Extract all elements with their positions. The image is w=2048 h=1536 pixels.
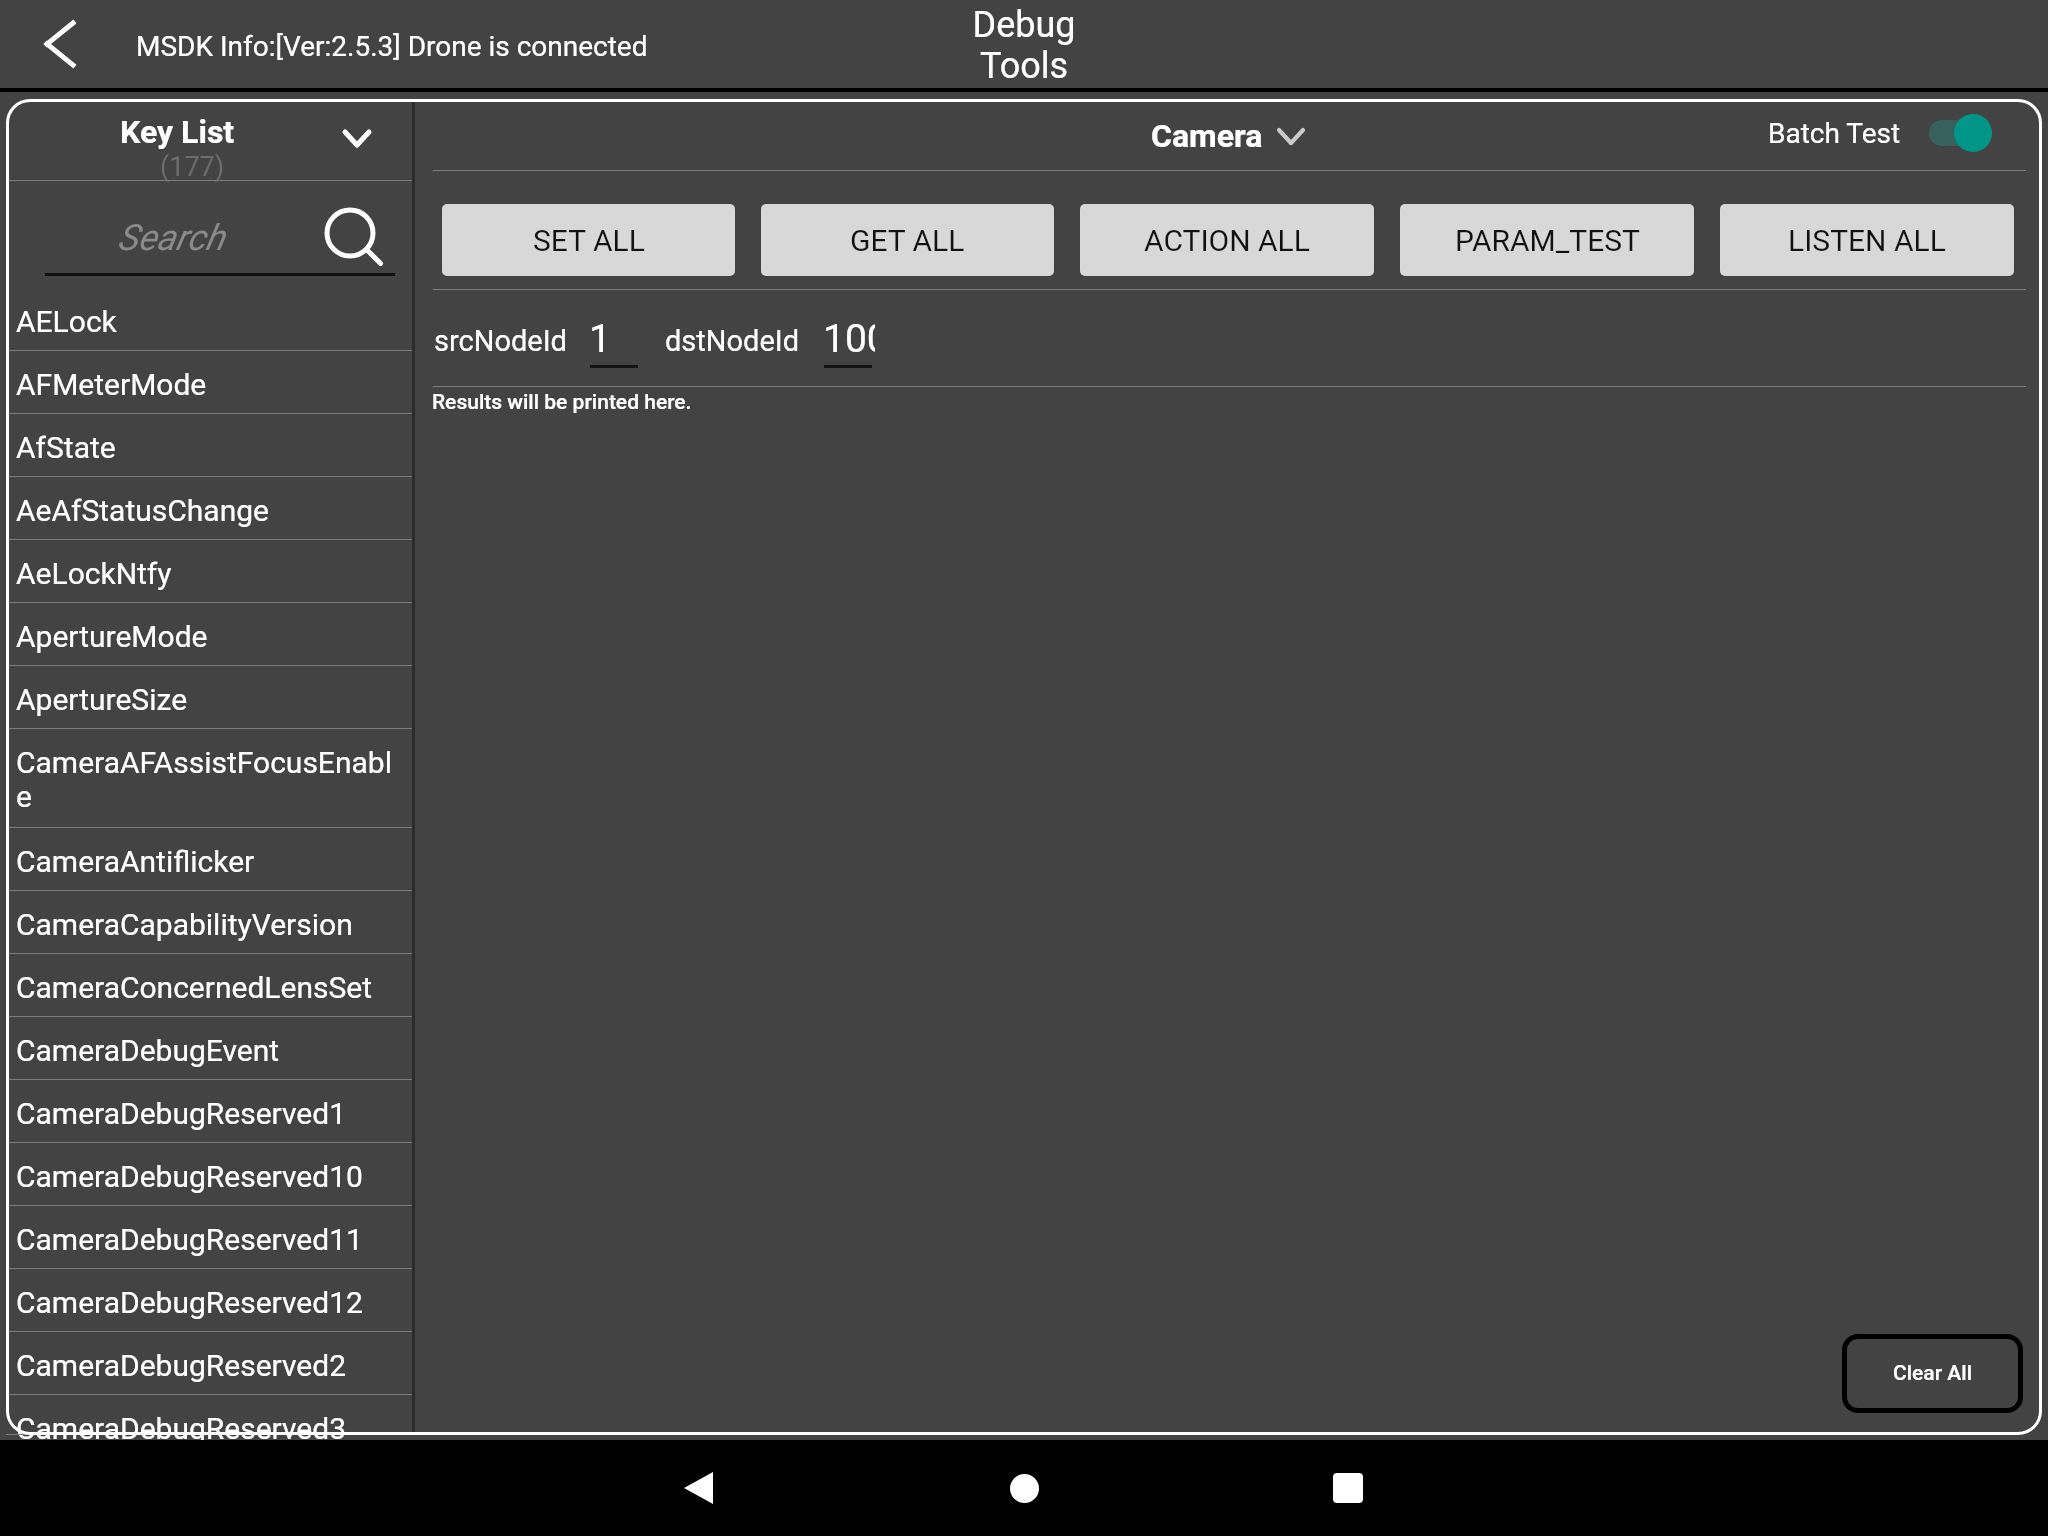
staticText: AFMeterMode (16, 367, 401, 402)
button[interactable]: GET ALL (761, 204, 1054, 276)
staticText: CameraDebugReserved11 (16, 1222, 401, 1257)
button[interactable]: Home (960, 1440, 1088, 1536)
staticText: CameraDebugReserved3 (16, 1411, 401, 1446)
staticText: srcNodeId (434, 324, 567, 358)
button[interactable]: CameraDebugReserved10 (6, 1143, 412, 1206)
button[interactable]: CameraDebugReserved3 (6, 1395, 412, 1435)
button[interactable]: CameraAntiflicker (6, 828, 412, 891)
staticText: PARAM_TEST (1455, 223, 1640, 258)
button[interactable]: AeAfStatusChange (6, 477, 412, 540)
button[interactable]: ApertureMode (6, 603, 412, 666)
button[interactable]: CameraConcernedLensSet (6, 954, 412, 1017)
button[interactable]: PARAM_TEST (1400, 204, 1694, 276)
staticText: ApertureMode (16, 619, 401, 654)
staticText: 100 (823, 316, 875, 362)
button[interactable]: CameraDebugReserved11 (6, 1206, 412, 1269)
staticText: CameraAntiflicker (16, 844, 401, 879)
staticText: AELock (16, 304, 401, 339)
button[interactable]: AFMeterMode (6, 351, 412, 414)
staticText: MSDK Info:[Ver:2.5.3] Drone is connected (136, 30, 648, 63)
button[interactable]: Key List (6, 99, 412, 180)
button[interactable]: Camera (1151, 117, 1305, 155)
staticText: 1 (589, 316, 611, 362)
staticText: Clear All (1893, 1361, 1973, 1386)
staticText: LISTEN ALL (1788, 223, 1946, 258)
staticText: ApertureSize (16, 682, 401, 717)
staticText: Key List (120, 113, 235, 151)
staticText: CameraDebugEvent (16, 1033, 401, 1068)
staticText: Debug Tools (924, 4, 1124, 87)
button[interactable]: Clear All (1842, 1334, 2023, 1413)
button[interactable]: CameraDebugReserved2 (6, 1332, 412, 1395)
staticText: CameraDebugReserved2 (16, 1348, 401, 1383)
staticText: GET ALL (850, 223, 965, 258)
button[interactable]: ApertureSize (6, 666, 412, 729)
staticText: (177) (160, 151, 225, 183)
staticText: ACTION ALL (1144, 223, 1310, 258)
button[interactable]: CameraDebugEvent (6, 1017, 412, 1080)
staticText: CameraDebugReserved12 (16, 1285, 401, 1320)
button[interactable]: AELock (6, 288, 412, 351)
staticText: AeLockNtfy (16, 556, 401, 591)
button[interactable]: Search key list (6, 181, 412, 288)
staticText: AeAfStatusChange (16, 493, 401, 528)
staticText: Batch Test (1768, 117, 1901, 150)
button[interactable]: SET ALL (442, 204, 735, 276)
button[interactable]: CameraDebugReserved1 (6, 1080, 412, 1143)
button[interactable]: Batch Test (1768, 109, 1995, 157)
button[interactable]: ACTION ALL (1080, 204, 1374, 276)
button[interactable]: Recent apps (1284, 1440, 1412, 1536)
button[interactable]: LISTEN ALL (1720, 204, 2014, 276)
button[interactable]: CameraDebugReserved12 (6, 1269, 412, 1332)
staticText: CameraDebugReserved1 (16, 1096, 401, 1131)
staticText: Camera (1151, 117, 1263, 155)
staticText: CameraConcernedLensSet (16, 970, 401, 1005)
staticText: CameraCapabilityVersion (16, 907, 401, 942)
button[interactable]: AfState (6, 414, 412, 477)
button[interactable]: Back (28, 12, 92, 76)
button[interactable]: Back (634, 1440, 762, 1536)
staticText: Results will be printed here. (432, 390, 692, 415)
button[interactable]: CameraCapabilityVersion (6, 891, 412, 954)
staticText: CameraAFAssistFocusEnable (16, 745, 401, 814)
button[interactable]: AeLockNtfy (6, 540, 412, 603)
staticText: CameraDebugReserved10 (16, 1159, 401, 1194)
button[interactable]: CameraAFAssistFocusEnable (6, 729, 412, 828)
staticText: Search (117, 217, 225, 259)
staticText: dstNodeId (665, 324, 800, 358)
staticText: AfState (16, 430, 401, 465)
staticText: SET ALL (533, 223, 645, 258)
